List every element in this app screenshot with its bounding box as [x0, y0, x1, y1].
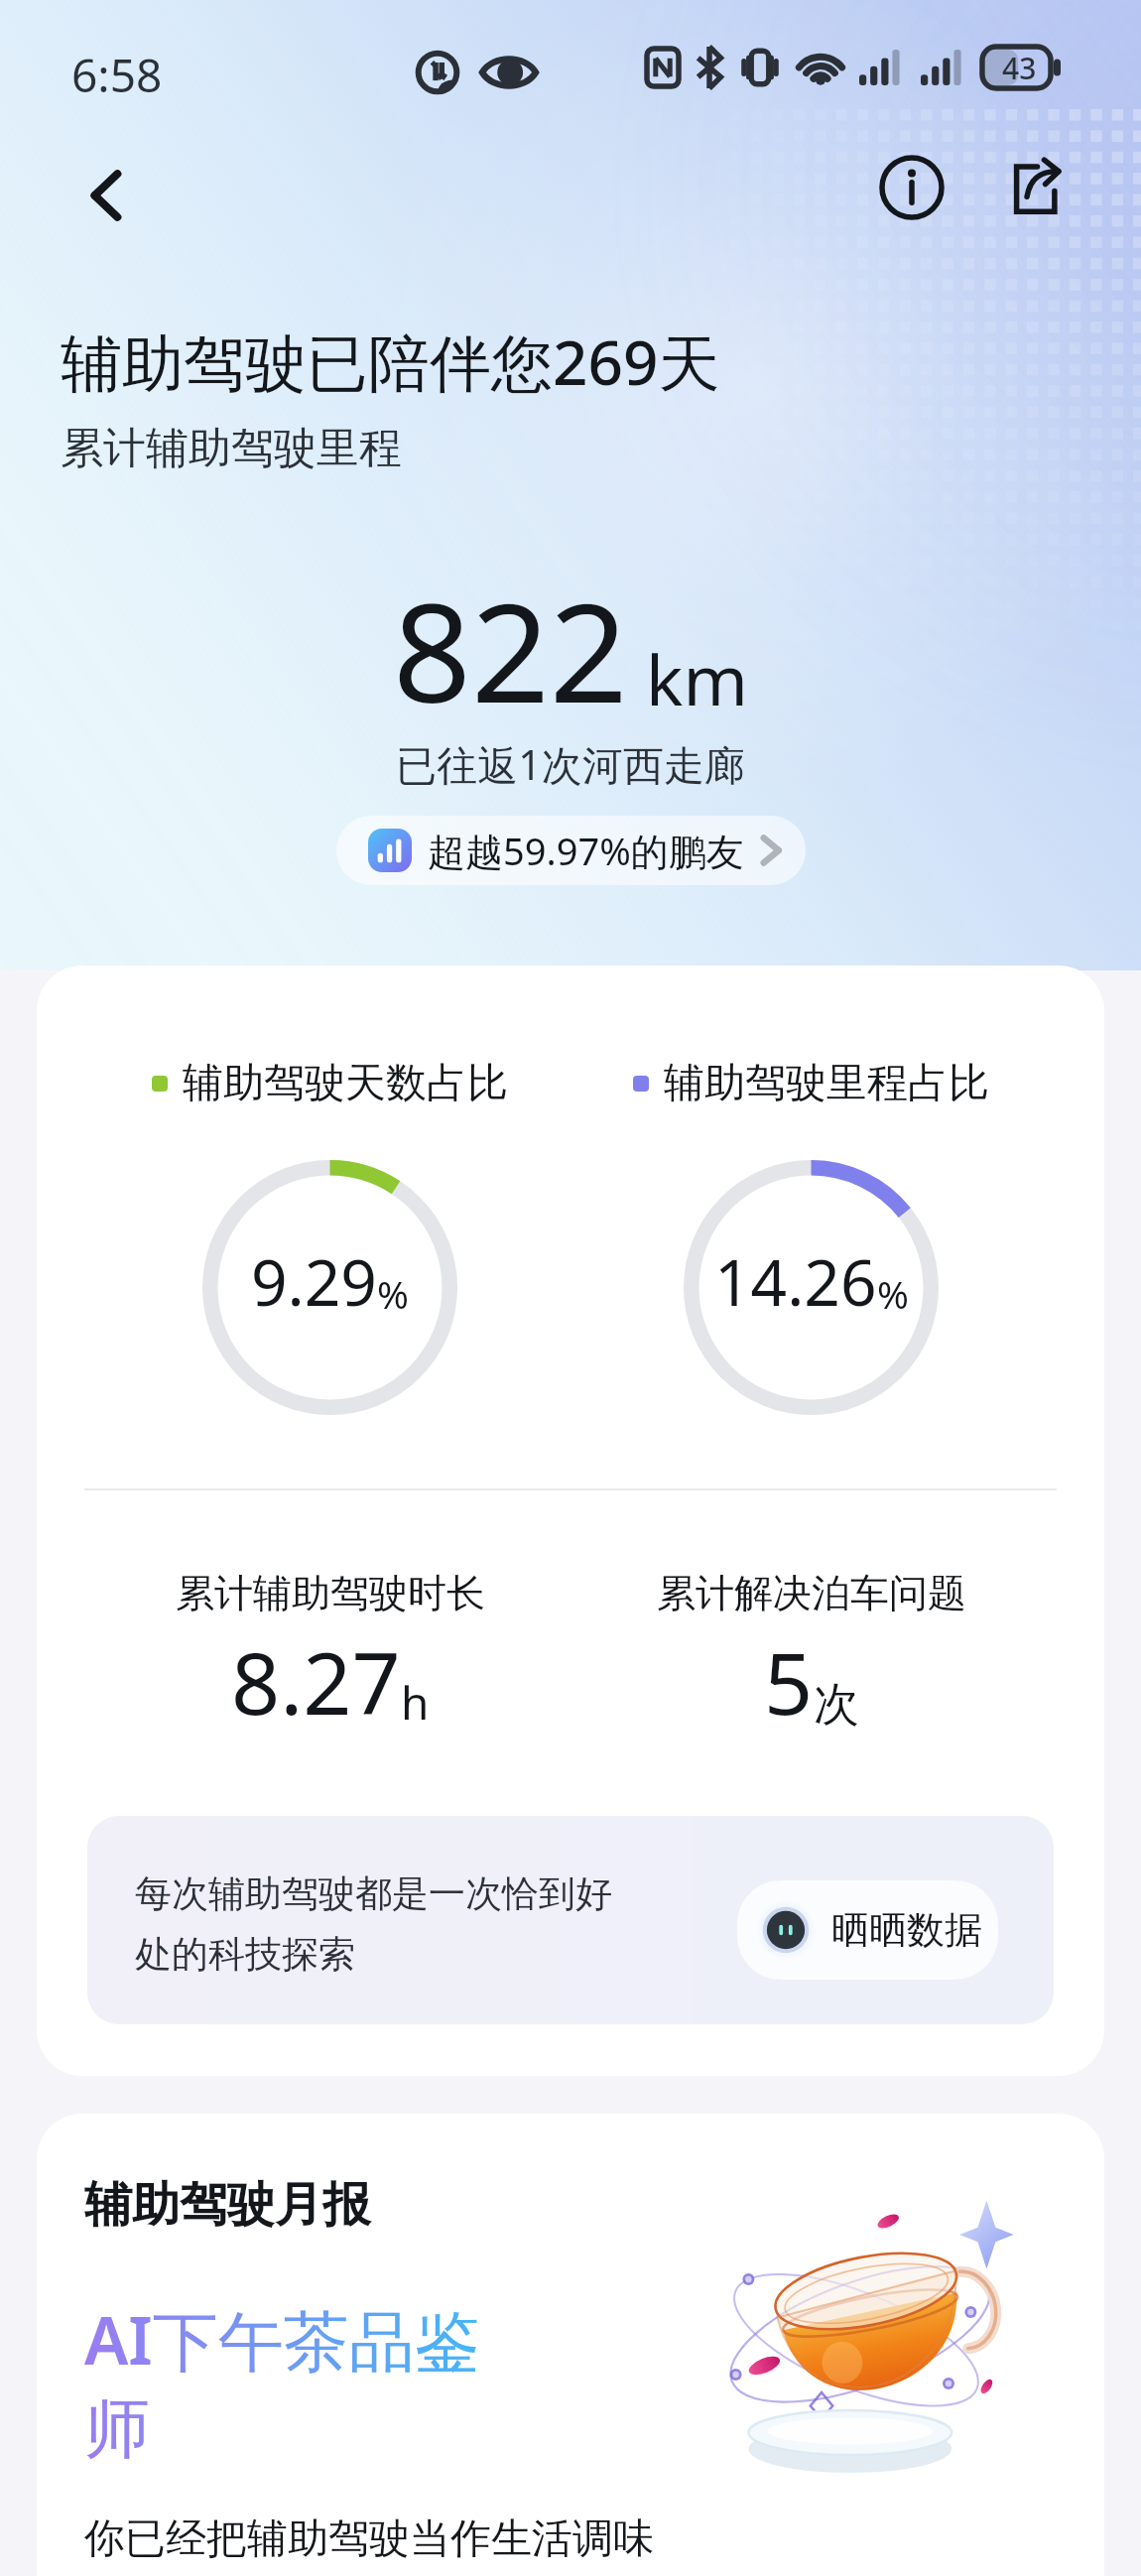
staticText: 9.29	[251, 1238, 377, 1325]
staticText: %	[877, 1268, 909, 1320]
staticText: 每次辅助驾驶都是一次恰到好 处的科技探索	[135, 1870, 612, 1978]
staticText: 822	[393, 556, 628, 742]
staticText: %	[377, 1268, 409, 1320]
staticText: 辅助驾驶月报	[84, 2175, 370, 2235]
staticText: 5	[764, 1623, 814, 1739]
staticText: 辅助驾驶天数占比	[183, 1058, 508, 1109]
button[interactable]: Share	[992, 146, 1076, 229]
staticText: 辅助驾驶里程占比	[664, 1058, 989, 1109]
staticText: 14.26	[714, 1238, 877, 1325]
staticText: 8.27	[231, 1623, 401, 1739]
staticText: 累计辅助驾驶里程	[61, 422, 402, 475]
staticText: 超越59.97%的鹏友	[428, 825, 744, 876]
staticText: 次	[814, 1676, 859, 1734]
button[interactable]: Back	[65, 154, 149, 237]
staticText: h	[401, 1671, 430, 1734]
staticText: 累计解决泊车问题	[657, 1569, 966, 1617]
staticText: km	[646, 631, 748, 725]
staticText: 6:58	[71, 44, 163, 106]
button[interactable]: 晒晒数据	[737, 1880, 998, 1980]
staticText: AI下午茶品鉴 师	[84, 2294, 480, 2471]
staticText: 你已经把辅助驾驶当作生活调味	[84, 2513, 654, 2565]
staticText: 43	[1002, 48, 1037, 88]
button[interactable]: 超越59.97%的鹏友	[336, 816, 806, 885]
button[interactable]: 辅助驾驶月报	[37, 2114, 1104, 2576]
button[interactable]: Info	[870, 146, 953, 229]
staticText: 辅助驾驶已陪伴您269天	[61, 320, 720, 404]
staticText: 已往返1次河西走廊	[0, 736, 1141, 792]
staticText: 累计辅助驾驶时长	[176, 1569, 485, 1617]
staticText: 晒晒数据	[831, 1906, 982, 1954]
